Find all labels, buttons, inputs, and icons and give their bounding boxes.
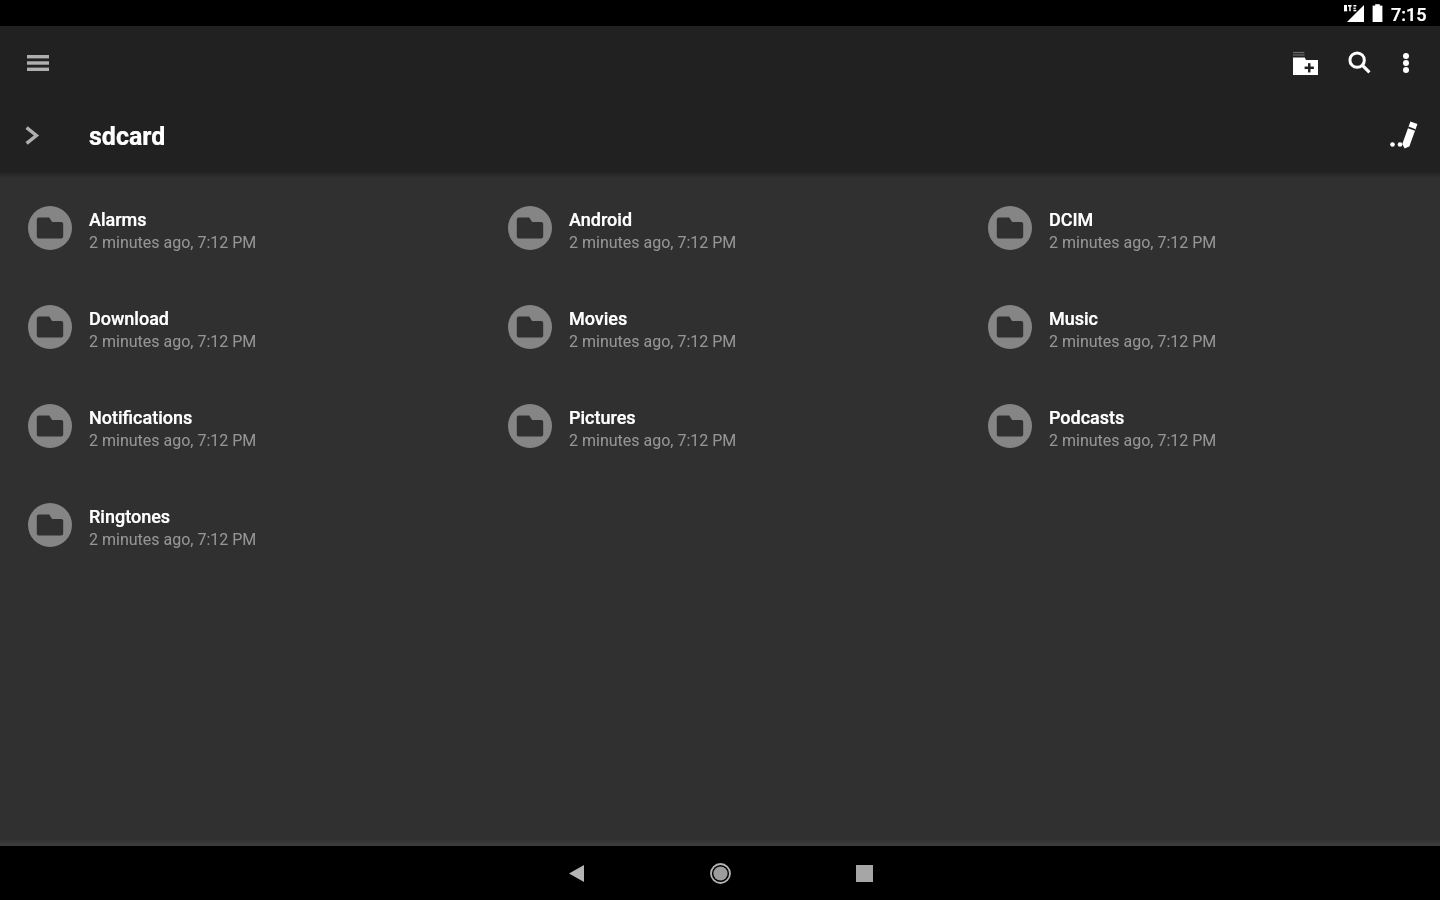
button[interactable]: sdcard	[0, 100, 320, 172]
button[interactable]: Ringtones	[0, 475, 480, 574]
staticText: 2 minutes ago, 7:12 PM	[569, 431, 737, 450]
button[interactable]: Podcasts	[960, 376, 1440, 475]
staticText: 2 minutes ago, 7:12 PM	[569, 233, 737, 252]
staticText: DCIM	[1049, 209, 1094, 230]
button[interactable]: New folder	[1281, 39, 1329, 87]
button[interactable]: Download	[0, 277, 480, 376]
staticText: Alarms	[89, 209, 147, 230]
button[interactable]: Menu	[13, 38, 62, 87]
staticText: Movies	[569, 308, 628, 329]
staticText: Podcasts	[1049, 407, 1125, 428]
button[interactable]: Music	[960, 277, 1440, 376]
button[interactable]: Notifications	[0, 376, 480, 475]
staticText: 7:15	[1391, 4, 1427, 25]
staticText: 2 minutes ago, 7:12 PM	[1049, 233, 1217, 252]
staticText: 2 minutes ago, 7:12 PM	[89, 233, 257, 252]
staticText: 2 minutes ago, 7:12 PM	[569, 332, 737, 351]
staticText: Ringtones	[89, 506, 171, 527]
staticText: sdcard	[89, 122, 166, 151]
button[interactable]: Back	[552, 849, 600, 897]
staticText: 2 minutes ago, 7:12 PM	[1049, 332, 1217, 351]
staticText: 2 minutes ago, 7:12 PM	[89, 332, 257, 351]
button[interactable]: Movies	[480, 277, 960, 376]
button[interactable]: Recent apps	[840, 849, 888, 897]
button[interactable]: Edit path	[1380, 106, 1432, 166]
staticText: Notifications	[89, 407, 193, 428]
staticText: Android	[569, 209, 633, 230]
button[interactable]: Home	[696, 849, 744, 897]
button[interactable]: Pictures	[480, 376, 960, 475]
button[interactable]: DCIM	[960, 178, 1440, 277]
button[interactable]: Alarms	[0, 178, 480, 277]
staticText: 2 minutes ago, 7:12 PM	[89, 530, 257, 549]
staticText: Music	[1049, 308, 1098, 329]
button[interactable]: Android	[480, 178, 960, 277]
button[interactable]: Search	[1336, 39, 1384, 87]
staticText: 2 minutes ago, 7:12 PM	[1049, 431, 1217, 450]
staticText: 2 minutes ago, 7:12 PM	[89, 431, 257, 450]
staticText: Download	[89, 308, 169, 329]
staticText: Pictures	[569, 407, 636, 428]
button[interactable]: More options	[1382, 39, 1430, 87]
